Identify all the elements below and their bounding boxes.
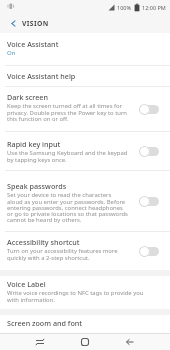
- staticText: 12:00 PM: [142, 4, 166, 11]
- button[interactable]: [10, 20, 17, 27]
- button[interactable]: [125, 337, 135, 347]
- staticText: Dark screen: [7, 92, 48, 102]
- staticText: Speak passwords: [7, 181, 67, 191]
- staticText: Voice Assistant: [7, 39, 59, 49]
- staticText: Accessibility shortcut: [7, 237, 80, 247]
- button[interactable]: Voice Assistant: [0, 33, 170, 65]
- staticText: 100%: [117, 4, 132, 11]
- button[interactable]: Screen zoom and font: [0, 315, 170, 333]
- staticText: Rapid key input: [7, 139, 61, 149]
- staticText: Keep the screen turned off at all times …: [7, 102, 128, 123]
- button[interactable]: Voice Label: [0, 276, 170, 309]
- button[interactable]: [80, 337, 90, 347]
- button[interactable]: Rapid key input: [0, 132, 170, 170]
- staticText: Use the Samsung Keyboard and the keypad …: [7, 149, 128, 164]
- button[interactable]: Dark screen: [0, 87, 170, 131]
- staticText: On: [7, 49, 16, 57]
- button[interactable]: [35, 337, 45, 347]
- button[interactable]: Voice Assistant help: [0, 66, 170, 86]
- staticText: Screen zoom and font: [7, 318, 83, 328]
- staticText: VISION: [22, 19, 49, 28]
- staticText: Voice Assistant help: [7, 71, 76, 81]
- staticText: Turn on your accessibility features more…: [7, 247, 118, 262]
- staticText: Voice Label: [7, 279, 46, 289]
- button[interactable]: Accessibility shortcut: [0, 232, 170, 270]
- button[interactable]: Speak passwords: [0, 171, 170, 231]
- staticText: Set your device to read the characters a…: [7, 191, 128, 224]
- staticText: Write voice recordings to NFC tags to pr…: [7, 289, 144, 304]
